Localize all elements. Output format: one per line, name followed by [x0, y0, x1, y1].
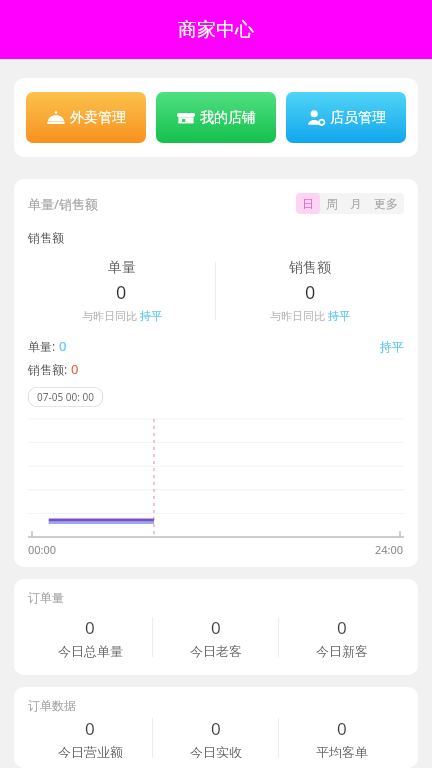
other: 外卖管理 [47, 109, 65, 127]
staticText: 0 [337, 616, 347, 639]
staticText: 今日营业额 [58, 744, 123, 758]
button[interactable]: 店员管理 [286, 92, 406, 143]
button[interactable]: 外卖管理 [26, 92, 146, 143]
staticText: 单量 [108, 259, 136, 277]
button[interactable]: 月 [344, 193, 368, 214]
staticText: 0 [59, 337, 67, 355]
staticText: 0 [71, 360, 79, 378]
staticText: 与昨日同比 [82, 308, 140, 323]
staticText: 销售额 [289, 259, 331, 277]
staticText: 07-05 00: 00 [37, 390, 94, 404]
staticText: 外卖管理 [70, 109, 126, 127]
staticText: 商家中心 [178, 18, 254, 42]
staticText: 店员管理 [330, 109, 386, 127]
staticText: 0 [211, 616, 221, 639]
staticText: 订单量 [28, 590, 64, 605]
staticText: 持平 [140, 309, 162, 323]
staticText: 今日新客 [316, 643, 368, 659]
staticText: 销售额 [28, 230, 64, 245]
staticText: 0 [211, 717, 221, 740]
staticText: 持平 [328, 309, 350, 323]
staticText: 0 [85, 616, 95, 639]
staticText: 与昨日同比 [270, 308, 328, 323]
staticText: 今日实收 [190, 744, 242, 758]
staticText: 持平 [380, 339, 404, 354]
button[interactable]: 我的店铺 [156, 92, 276, 143]
staticText: 0 [116, 280, 127, 305]
staticText: 销售额: [28, 361, 71, 377]
staticText: 平均客单 [316, 744, 368, 758]
staticText: 0 [337, 717, 347, 740]
staticText: 更多 [374, 196, 398, 211]
other: 我的店铺 [177, 109, 195, 127]
staticText: 日 [302, 196, 314, 211]
button[interactable]: 日 [296, 193, 320, 214]
staticText: 24:00 [375, 542, 404, 557]
staticText: 我的店铺 [200, 109, 256, 127]
staticText: 0 [305, 280, 316, 305]
staticText: 月 [350, 196, 362, 211]
button[interactable]: 周 [320, 193, 344, 214]
staticText: 订单数据 [28, 698, 76, 713]
staticText: 今日老客 [190, 643, 242, 659]
staticText: 单量: [28, 338, 59, 354]
staticText: 0 [85, 717, 95, 740]
button[interactable]: 更多 [368, 193, 404, 214]
staticText: 00:00 [28, 542, 57, 557]
other: 店员管理 [307, 109, 325, 127]
staticText: 单量/销售额 [28, 195, 98, 213]
staticText: 今日总单量 [58, 643, 123, 659]
staticText: 周 [326, 196, 338, 211]
button[interactable]: 07-05 00: 00 [28, 387, 103, 407]
